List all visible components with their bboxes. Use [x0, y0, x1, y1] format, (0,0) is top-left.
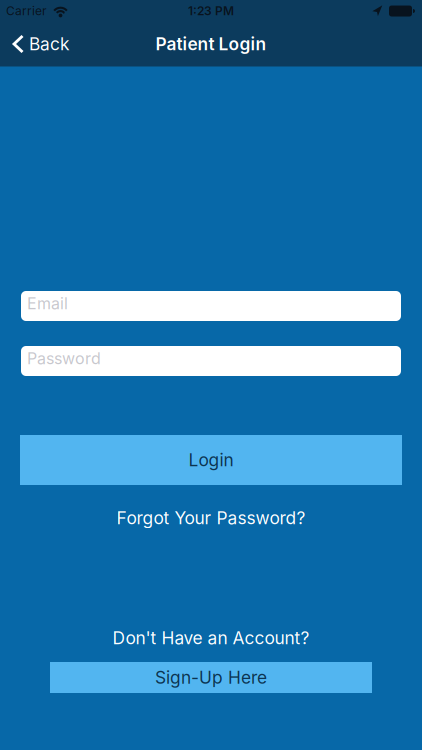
staticText: Don't Have an Account? — [112, 628, 309, 648]
staticText: Email — [27, 294, 68, 313]
staticText: Login — [188, 450, 233, 470]
button[interactable]: Sign-Up Here — [50, 662, 372, 693]
staticText: Patient Login — [155, 34, 266, 54]
staticText: Sign-Up Here — [155, 667, 267, 688]
staticText: Password — [27, 349, 101, 368]
staticText: Back — [29, 34, 70, 54]
staticText: Carrier — [6, 4, 47, 18]
button[interactable]: Password — [21, 346, 401, 376]
button[interactable]: Forgot Your Password? — [116, 508, 305, 528]
button[interactable]: Email — [21, 291, 401, 321]
button[interactable]: Back — [0, 34, 70, 54]
staticText: 1:23 PM — [188, 4, 234, 18]
staticText: Forgot Your Password? — [116, 508, 305, 528]
button[interactable]: Login — [20, 435, 402, 485]
